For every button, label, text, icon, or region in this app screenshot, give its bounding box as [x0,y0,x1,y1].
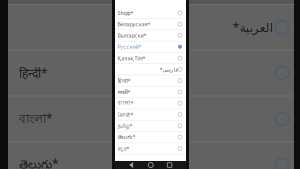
staticText: Қазақ Тілі* [117,54,145,62]
button[interactable]: বাংলা* [115,98,186,109]
button[interactable]: தமிழ்* [115,120,186,131]
staticText: Български* [117,32,146,39]
staticText: Беларуская* [117,20,150,28]
button[interactable]: తెలుగు* [115,132,186,143]
staticText: తెలుగు* [19,156,59,169]
button[interactable]: తెలుగు* [0,142,300,169]
staticText: العربية* [232,19,272,35]
staticText: বাংলা* [117,99,133,107]
staticText: हिन्दी* [19,65,48,81]
button[interactable]: ਪੰਜਾਬੀ* [115,109,186,120]
staticText: தமிழ்* [117,122,132,130]
button[interactable]: Shqip* [115,7,186,18]
button[interactable]: Home [148,162,153,167]
button[interactable]: Беларуская* [115,19,186,30]
staticText: Русский* [117,43,141,50]
staticText: বাংলা* [19,110,53,128]
button[interactable]: Back [129,162,134,168]
button[interactable]: ಕನ್ನಡ* [115,143,186,154]
staticText: فارسی* [159,66,178,73]
staticText: ਪੰਜਾਬੀ* [117,111,133,118]
button[interactable]: العربية* [0,5,300,49]
staticText: मराठी* [117,88,130,96]
staticText: తెలుగు* [117,133,135,141]
button[interactable]: Recents [167,163,172,167]
button[interactable]: मराठी* [115,87,186,97]
button[interactable]: हिन्दी* [115,75,186,86]
button[interactable]: বাংলা* [0,96,300,141]
staticText: हिन्दी* [117,77,130,84]
button[interactable]: فارسی* [115,64,186,75]
button[interactable]: Қазақ Тілі* [115,53,186,63]
button[interactable]: हिन्दी* [0,50,300,95]
button[interactable]: Русский* [115,41,186,52]
staticText: ಕನ್ನಡ* [117,145,129,152]
staticText: Shqip* [117,9,133,16]
button[interactable]: Български* [115,30,186,41]
